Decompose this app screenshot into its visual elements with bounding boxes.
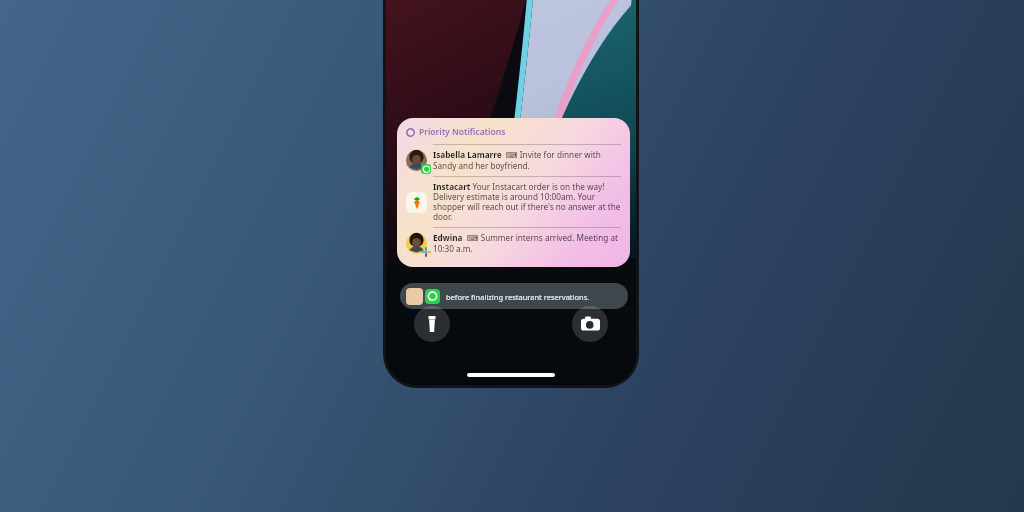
button[interactable]: before finalizing restaurant reservation… <box>400 283 628 309</box>
staticText: Isabella Lamarre ⌨ Invite for dinner wit… <box>433 150 621 171</box>
button[interactable]: Priority Notifications <box>397 118 630 267</box>
staticText: before finalizing restaurant reservation… <box>446 292 590 302</box>
button[interactable]: Instacart Your Instacart order is on the… <box>406 177 621 227</box>
button[interactable]: Flashlight <box>414 306 450 342</box>
staticText: Instacart Your Instacart order is on the… <box>433 182 621 222</box>
staticText: Edwina ⌨ Summer interns arrived. Meeting… <box>433 233 621 254</box>
button[interactable]: Edwina ⌨ Summer interns arrived. Meeting… <box>406 228 621 259</box>
button[interactable]: Isabella Lamarre ⌨ Invite for dinner wit… <box>406 145 621 176</box>
button[interactable]: Camera <box>572 306 608 342</box>
staticText: Priority Notifications <box>419 126 506 138</box>
